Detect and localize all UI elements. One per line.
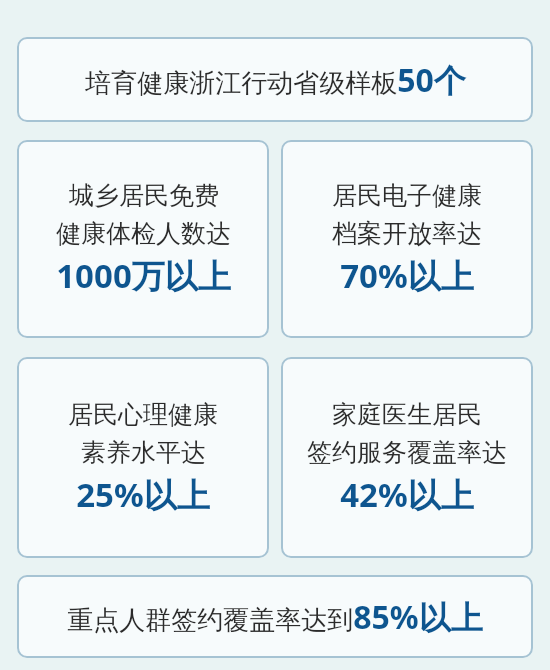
staticText: 健康体检人数达 xyxy=(56,218,231,249)
staticText: 25%以上 xyxy=(76,472,210,517)
staticText: 42%以上 xyxy=(340,472,474,517)
staticText: 70%以上 xyxy=(340,253,474,298)
staticText: 培育健康浙江行动省级样板50个 xyxy=(85,58,466,102)
staticText: 重点人群签约覆盖率达到85%以上 xyxy=(67,595,483,639)
button[interactable]: 居民电子健康 xyxy=(281,140,533,338)
staticText: 居民心理健康 xyxy=(68,399,218,430)
button[interactable]: 居民心理健康 xyxy=(17,357,269,558)
staticText: 居民电子健康 xyxy=(332,180,482,211)
staticText: 素养水平达 xyxy=(81,437,206,468)
button[interactable]: 城乡居民免费 xyxy=(17,140,269,338)
button[interactable]: 培育健康浙江行动省级样板50个 xyxy=(17,37,533,122)
button[interactable]: 重点人群签约覆盖率达到85%以上 xyxy=(17,575,533,658)
staticText: 家庭医生居民 xyxy=(332,399,482,430)
staticText: 档案开放率达 xyxy=(332,218,482,249)
staticText: 1000万以上 xyxy=(56,253,231,298)
button[interactable]: 家庭医生居民 xyxy=(281,357,533,558)
staticText: 城乡居民免费 xyxy=(69,180,219,211)
staticText: 签约服务覆盖率达 xyxy=(307,437,507,468)
